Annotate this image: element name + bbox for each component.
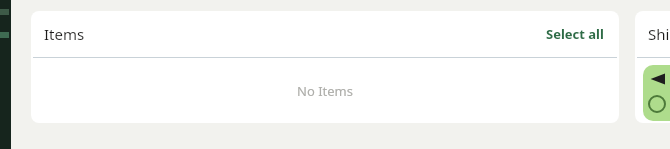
button[interactable]: Select all [540, 21, 610, 47]
staticText: Shipments [648, 24, 670, 44]
staticText: Items [44, 24, 85, 44]
staticText: No Items [297, 82, 353, 100]
button[interactable]: Navigation rail [0, 0, 11, 149]
staticText: Select all [546, 25, 604, 43]
button[interactable]: Items [31, 11, 619, 123]
button[interactable] [643, 65, 670, 121]
button[interactable]: Shipments [635, 11, 670, 123]
